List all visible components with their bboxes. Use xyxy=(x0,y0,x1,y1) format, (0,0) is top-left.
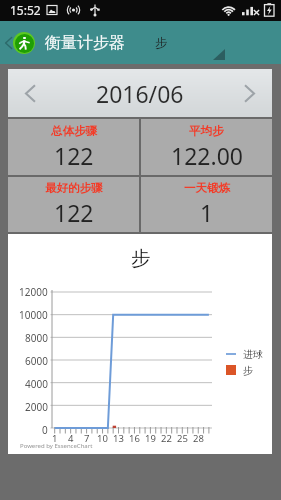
button[interactable]: Next month xyxy=(212,69,272,117)
staticText: 22 xyxy=(161,432,172,445)
staticText: 8000 xyxy=(25,331,48,345)
staticText: 平均步 xyxy=(189,124,224,138)
button[interactable]: Previous month xyxy=(8,69,68,117)
staticText: 6000 xyxy=(25,354,48,368)
staticText: 步 xyxy=(131,246,151,271)
staticText: 122 xyxy=(54,197,94,228)
staticText: 25 xyxy=(177,432,188,445)
button[interactable]: 最好的步骤 xyxy=(8,177,139,232)
staticText: 步 xyxy=(155,35,168,51)
staticText: 0 xyxy=(42,423,48,436)
staticText: Powered by EssenceChart xyxy=(20,442,93,450)
staticText: 4 xyxy=(68,432,74,445)
button[interactable]: Back xyxy=(0,21,130,64)
staticText: 4000 xyxy=(25,377,48,391)
staticText: 122 xyxy=(54,140,94,171)
button[interactable]: 总体步骤 xyxy=(8,119,139,175)
staticText: 衡量计步器 xyxy=(45,33,125,53)
staticText: 总体步骤 xyxy=(51,124,97,138)
staticText: 1 xyxy=(200,197,214,228)
button[interactable]: 平均步 xyxy=(141,119,272,175)
staticText: 13 xyxy=(113,432,124,445)
staticText: 12000 xyxy=(19,285,48,299)
staticText: 7 xyxy=(84,432,90,445)
staticText: 最好的步骤 xyxy=(45,181,103,195)
staticText: 122.00 xyxy=(171,140,243,171)
staticText: 2016/06 xyxy=(96,78,184,109)
staticText: 19 xyxy=(145,432,156,445)
staticText: 1 xyxy=(52,432,58,445)
staticText: 10 xyxy=(97,432,108,445)
staticText: 2000 xyxy=(25,400,48,414)
staticText: 一天锻炼 xyxy=(184,181,230,195)
staticText: 进球 xyxy=(243,348,263,361)
staticText: 15:52 xyxy=(10,2,41,18)
button[interactable]: 一天锻炼 xyxy=(141,177,272,232)
staticText: 28 xyxy=(193,432,204,445)
staticText: 10000 xyxy=(19,308,48,322)
staticText: 16 xyxy=(129,432,140,445)
staticText: 步 xyxy=(243,364,253,377)
other: Back xyxy=(4,35,13,51)
